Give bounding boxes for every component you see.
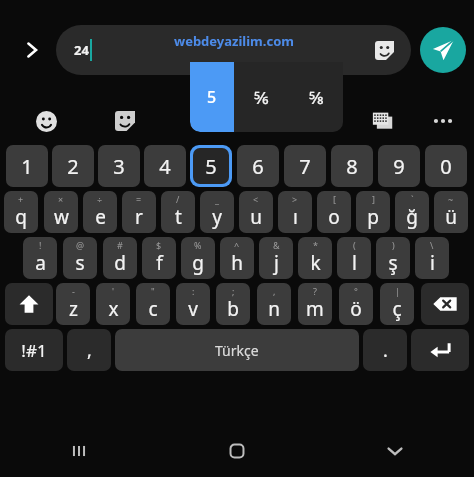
button[interactable]: Shift <box>5 283 53 325</box>
button[interactable]: $ <box>142 237 176 279</box>
button[interactable]: # <box>103 237 137 279</box>
staticText: o <box>328 204 340 230</box>
staticText: < <box>253 193 259 205</box>
button[interactable]: Expand <box>16 34 48 66</box>
button[interactable]: | <box>380 283 414 325</box>
button[interactable]: ÷ <box>83 191 117 233</box>
staticText: : <box>192 285 195 297</box>
staticText: ÷ <box>97 193 103 205</box>
staticText: 9 <box>393 153 405 180</box>
staticText: z <box>69 296 78 322</box>
button[interactable]: < <box>239 191 273 233</box>
button[interactable]: . <box>363 329 407 371</box>
staticText: r <box>135 204 143 230</box>
button[interactable]: [ <box>317 191 351 233</box>
button[interactable]: Hide keyboard <box>316 425 474 477</box>
button[interactable]: , <box>257 283 291 325</box>
staticText: t <box>175 204 182 230</box>
button[interactable]: 6 <box>237 145 279 187</box>
staticText: 3 <box>113 153 125 180</box>
staticText: d <box>114 250 126 276</box>
button[interactable]: 8 <box>331 145 373 187</box>
button[interactable]: 5⁄6 <box>234 62 289 132</box>
button[interactable]: * <box>298 237 332 279</box>
staticText: 5 <box>207 86 217 108</box>
staticText: m <box>306 296 324 322</box>
button[interactable]: 5⁄8 <box>289 62 343 132</box>
button[interactable]: _ <box>200 191 234 233</box>
button[interactable]: ? <box>298 283 332 325</box>
button[interactable]: More options <box>426 104 460 138</box>
button[interactable]: Home <box>158 425 316 477</box>
staticText: w <box>54 204 69 230</box>
button[interactable]: × <box>44 191 78 233</box>
staticText: u <box>250 204 262 230</box>
button[interactable]: , <box>67 329 111 371</box>
staticText: ) <box>392 239 395 251</box>
staticText: p <box>367 204 379 230</box>
button[interactable]: = <box>122 191 156 233</box>
button[interactable]: !#1 <box>5 329 63 371</box>
staticText: k <box>310 250 321 276</box>
button[interactable]: ' <box>96 283 130 325</box>
button[interactable]: ~ <box>434 191 468 233</box>
button[interactable]: > <box>278 191 312 233</box>
staticText: ^ <box>234 239 240 251</box>
staticText: y <box>212 204 222 230</box>
staticText: = <box>136 193 142 205</box>
button[interactable]: Switch keyboard <box>366 104 400 138</box>
button[interactable]: ( <box>337 237 371 279</box>
button[interactable]: - <box>56 283 90 325</box>
staticText: b <box>227 296 239 322</box>
button[interactable]: Emoji <box>29 104 63 138</box>
staticText: 6 <box>252 153 264 180</box>
button[interactable]: 7 <box>284 145 326 187</box>
button[interactable]: @ <box>63 237 97 279</box>
staticText: 5⁄6 <box>254 86 269 109</box>
button[interactable]: 1 <box>6 145 48 187</box>
button[interactable]: 0 <box>425 145 467 187</box>
button[interactable]: Enter <box>411 329 469 371</box>
button[interactable]: \ <box>415 237 449 279</box>
button[interactable]: Türkçe <box>115 329 359 371</box>
button[interactable]: Backspace <box>421 283 469 325</box>
button[interactable]: ) <box>376 237 410 279</box>
staticText: & <box>273 239 280 251</box>
button[interactable]: 4 <box>144 145 186 187</box>
button[interactable]: 9 <box>378 145 420 187</box>
staticText: 0 <box>440 153 452 180</box>
button[interactable]: / <box>161 191 195 233</box>
button[interactable]: + <box>4 191 38 233</box>
staticText: + <box>18 193 24 205</box>
button[interactable]: ! <box>23 237 57 279</box>
button[interactable]: " <box>136 283 170 325</box>
staticText: ü <box>445 204 457 230</box>
button[interactable]: 2 <box>52 145 94 187</box>
button[interactable]: ^ <box>220 237 254 279</box>
button[interactable]: ] <box>356 191 390 233</box>
button[interactable]: % <box>181 237 215 279</box>
button[interactable]: Send <box>420 27 466 73</box>
staticText: i <box>430 250 435 276</box>
staticText: 4 <box>159 153 171 180</box>
staticText: # <box>117 239 123 251</box>
staticText: l <box>352 250 357 276</box>
button[interactable]: Stickers panel <box>108 104 142 138</box>
staticText: Türkçe <box>215 341 259 360</box>
staticText: 24 <box>74 41 89 59</box>
staticText: 5⁄8 <box>309 86 324 109</box>
button[interactable]: 5 <box>193 148 229 184</box>
button[interactable]: Recent apps <box>0 425 158 477</box>
button[interactable]: ; <box>216 283 250 325</box>
staticText: v <box>188 296 198 322</box>
button[interactable]: Stickers <box>371 37 397 63</box>
staticText: \ <box>430 239 434 251</box>
staticText: 7 <box>299 153 311 180</box>
button[interactable]: 3 <box>98 145 140 187</box>
button[interactable]: & <box>259 237 293 279</box>
button[interactable]: 5 <box>190 62 234 132</box>
button[interactable]: ° <box>339 283 373 325</box>
button[interactable]: 24 <box>56 25 411 75</box>
button[interactable]: ` <box>395 191 429 233</box>
button[interactable]: : <box>176 283 210 325</box>
